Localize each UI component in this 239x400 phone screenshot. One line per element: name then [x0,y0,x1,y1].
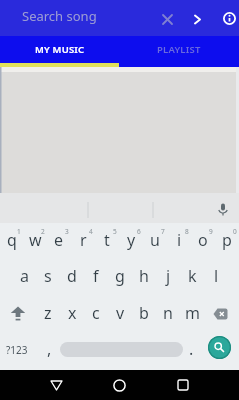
staticText: j [166,265,171,287]
staticText: w [29,229,42,251]
button[interactable]: o [191,223,215,260]
staticText: 3 [65,227,69,236]
staticText: PLAYLIST [157,43,201,56]
button[interactable]: y [119,223,143,260]
button[interactable] [177,379,189,391]
staticText: h [139,265,149,287]
button[interactable]: n [156,297,180,334]
button[interactable]: , [47,338,52,360]
staticText: z [44,302,52,324]
staticText: b [139,302,149,324]
button[interactable]: d [60,260,84,297]
button[interactable]: p [215,223,239,260]
button[interactable]: . [189,338,194,360]
button[interactable]: x [60,297,84,334]
staticText: e [54,229,64,251]
button[interactable]: w [23,223,47,260]
button[interactable]: q [0,223,23,260]
button[interactable] [9,306,27,321]
button[interactable] [223,12,236,25]
staticText: g [115,265,125,287]
staticText: 8 [185,227,189,236]
staticText: 0 [233,227,237,236]
staticText: u [150,229,160,251]
staticText: a [20,265,29,287]
button[interactable]: u [143,223,167,260]
staticText: t [104,229,110,251]
staticText: q [7,229,17,251]
button[interactable]: b [132,297,156,334]
button[interactable]: g [108,260,132,297]
staticText: 6 [137,227,141,236]
button[interactable] [113,379,126,392]
button[interactable]: r [71,223,95,260]
staticText: c [92,302,100,324]
button[interactable]: i [167,223,191,260]
button[interactable]: c [84,297,108,334]
button[interactable] [162,14,173,25]
staticText: 9 [209,227,213,236]
staticText: v [116,302,125,324]
staticText: y [127,229,136,251]
staticText: 2 [41,227,45,236]
staticText: k [188,265,197,287]
button[interactable]: s [36,260,60,297]
button[interactable] [213,308,228,320]
button[interactable] [208,336,231,359]
button[interactable] [50,380,63,391]
staticText: 7 [161,227,165,236]
staticText: 4 [89,227,93,236]
button[interactable]: l [204,260,228,297]
button[interactable] [216,203,230,217]
button[interactable] [60,342,183,357]
button[interactable]: k [180,260,204,297]
staticText: MY MUSIC [35,43,85,56]
button[interactable]: v [108,297,132,334]
button[interactable]: Search song [22,7,97,25]
staticText: f [93,265,99,287]
staticText: 5 [113,227,117,236]
staticText: s [44,265,52,287]
staticText: p [222,229,232,251]
staticText: 1 [17,227,21,236]
button[interactable]: j [156,260,180,297]
staticText: r [80,229,87,251]
staticText: m [185,302,200,324]
button[interactable]: t [95,223,119,260]
staticText: i [177,229,182,251]
button[interactable]: f [84,260,108,297]
button[interactable]: z [36,297,60,334]
button[interactable]: e [47,223,71,260]
button[interactable]: h [132,260,156,297]
button[interactable]: MY MUSIC [0,36,119,63]
button[interactable]: ?123 [4,338,30,362]
staticText: ?123 [6,343,28,357]
staticText: n [163,302,173,324]
staticText: l [214,265,219,287]
staticText: x [68,302,77,324]
button[interactable]: PLAYLIST [119,36,239,63]
button[interactable] [193,15,202,24]
staticText: d [67,265,77,287]
button[interactable]: a [12,260,36,297]
staticText: o [198,229,208,251]
button[interactable]: m [180,297,204,334]
